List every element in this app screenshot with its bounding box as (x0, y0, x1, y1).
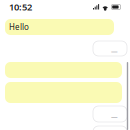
staticText: — (111, 112, 118, 121)
button[interactable]: Message (93, 106, 127, 122)
button[interactable]: Message (93, 41, 127, 56)
staticText: Hello (9, 22, 29, 32)
staticText: 10:52 (9, 1, 32, 13)
button[interactable] (5, 82, 122, 103)
button[interactable]: Message (93, 126, 127, 130)
button[interactable]: Hello (5, 19, 114, 35)
button[interactable] (5, 62, 122, 78)
staticText: — (111, 47, 118, 55)
